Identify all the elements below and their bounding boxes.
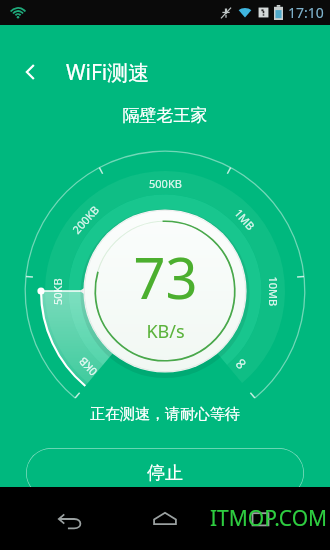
staticText: 1MB — [231, 206, 259, 233]
button[interactable]: Back — [10, 52, 50, 92]
staticText: 隔壁老王家 — [0, 105, 330, 126]
staticText: 50KB — [50, 278, 65, 305]
staticText: 10MB — [265, 276, 280, 306]
staticText: 500KB — [149, 176, 182, 191]
staticText: 73 — [133, 239, 198, 315]
staticText: 17:10 — [288, 3, 324, 22]
button[interactable]: Back — [45, 494, 95, 544]
staticText: KB/s — [146, 319, 185, 344]
button[interactable]: Recent apps — [235, 494, 285, 544]
staticText: ∞ — [229, 353, 253, 376]
staticText: WiFi测速 — [66, 58, 150, 87]
button[interactable]: 停止 — [26, 448, 304, 498]
staticText: ITMOP.COM — [210, 504, 328, 533]
button[interactable]: Home — [140, 494, 190, 544]
staticText: 200KB — [69, 202, 102, 237]
staticText: 正在测速，请耐心等待 — [0, 405, 330, 424]
staticText: 停止 — [147, 462, 183, 485]
staticText: 0KB — [75, 354, 100, 379]
